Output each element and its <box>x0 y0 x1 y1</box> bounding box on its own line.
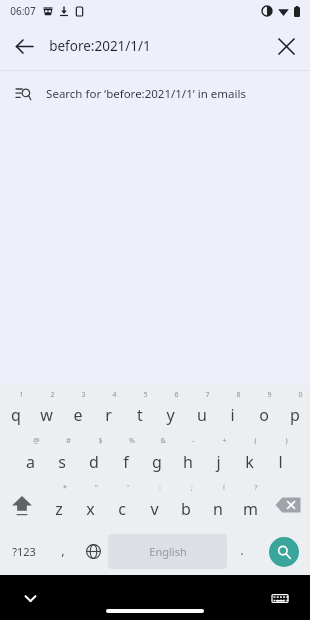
staticText: z <box>55 498 63 520</box>
button[interactable]: " <box>74 481 106 528</box>
staticText: 0 <box>298 390 303 400</box>
staticText: l <box>278 451 283 473</box>
staticText: 06:07 <box>10 4 36 18</box>
button[interactable]: Clear search <box>262 22 310 70</box>
staticText: f <box>123 451 129 473</box>
button[interactable]: - <box>172 434 203 481</box>
staticText: x <box>86 498 95 520</box>
button[interactable]: 2 <box>31 388 62 434</box>
staticText: , <box>61 541 65 559</box>
staticText: m <box>243 498 258 520</box>
staticText: 9 <box>267 390 272 400</box>
staticText: ? <box>254 483 258 493</box>
button[interactable]: ) <box>265 434 296 481</box>
staticText: e <box>73 404 83 426</box>
staticText: & <box>160 436 166 446</box>
staticText: b <box>181 498 191 520</box>
staticText: ! <box>223 483 225 493</box>
staticText: . <box>240 541 244 559</box>
button[interactable]: Backspace <box>266 481 310 528</box>
button[interactable]: 5 <box>124 388 155 434</box>
button[interactable]: Switch keyboard <box>262 580 298 616</box>
button[interactable]: 9 <box>248 388 279 434</box>
button[interactable]: ?123 <box>0 528 48 575</box>
button[interactable]: 7 <box>186 388 217 434</box>
button[interactable]: 3 <box>62 388 93 434</box>
staticText: ; <box>191 483 193 493</box>
staticText: v <box>150 498 159 520</box>
staticText: ) <box>285 436 288 446</box>
button[interactable]: Change language <box>78 528 108 575</box>
staticText: o <box>259 404 269 426</box>
button[interactable]: * <box>43 481 74 528</box>
button[interactable]: ! <box>202 481 234 528</box>
button[interactable]: 6 <box>155 388 186 434</box>
staticText: 3 <box>81 390 86 400</box>
staticText: " <box>95 483 98 493</box>
staticText: ' <box>127 483 129 493</box>
staticText: y <box>166 404 175 426</box>
staticText: u <box>197 404 207 426</box>
staticText: g <box>152 451 162 473</box>
staticText: r <box>105 404 112 426</box>
button[interactable]: English <box>108 534 227 569</box>
button[interactable]: Hide keyboard <box>12 580 48 616</box>
button[interactable]: @ <box>14 434 46 481</box>
staticText: 6 <box>174 390 179 400</box>
button[interactable]: # <box>46 434 78 481</box>
staticText: a <box>26 451 35 473</box>
staticText: + <box>222 436 227 446</box>
staticText: * <box>63 483 67 493</box>
button[interactable]: Search <box>257 528 310 575</box>
button[interactable]: $ <box>78 434 110 481</box>
button[interactable]: : <box>138 481 170 528</box>
staticText: ( <box>254 436 257 446</box>
staticText: $ <box>98 436 103 446</box>
button[interactable]: % <box>110 434 141 481</box>
button[interactable]: 8 <box>217 388 248 434</box>
staticText: English <box>149 544 187 559</box>
staticText: @ <box>33 436 40 446</box>
staticText: ?123 <box>12 544 36 559</box>
button[interactable]: . <box>227 528 257 575</box>
button[interactable]: ; <box>170 481 202 528</box>
button[interactable]: 4 <box>93 388 124 434</box>
staticText: q <box>11 404 21 426</box>
staticText: Search for ‘before:2021/1/1’ in emails <box>46 86 246 102</box>
button[interactable]: ' <box>106 481 138 528</box>
button[interactable]: Shift <box>0 481 43 528</box>
staticText: d <box>89 451 99 473</box>
staticText: h <box>183 451 193 473</box>
staticText: - <box>192 436 195 446</box>
button[interactable]: Back <box>0 22 48 70</box>
staticText: p <box>290 404 300 426</box>
staticText: n <box>213 498 223 520</box>
staticText: 4 <box>112 390 117 400</box>
button[interactable]: 1 <box>0 388 31 434</box>
button[interactable]: 0 <box>279 388 310 434</box>
staticText: 2 <box>50 390 55 400</box>
button[interactable]: & <box>141 434 172 481</box>
staticText: 1 <box>19 390 24 400</box>
staticText: before:2021/1/1 <box>49 37 151 55</box>
staticText: % <box>129 436 135 446</box>
button[interactable]: ( <box>234 434 265 481</box>
button[interactable]: Search for ‘before:2021/1/1’ in emails <box>0 71 310 116</box>
staticText: # <box>66 436 71 446</box>
staticText: : <box>159 483 161 493</box>
button[interactable]: , <box>48 528 78 575</box>
staticText: j <box>216 451 221 473</box>
staticText: c <box>118 498 126 520</box>
staticText: s <box>58 451 66 473</box>
staticText: k <box>245 451 254 473</box>
button[interactable]: ? <box>234 481 266 528</box>
staticText: 5 <box>143 390 148 400</box>
button[interactable]: + <box>203 434 234 481</box>
staticText: 7 <box>205 390 210 400</box>
staticText: t <box>137 404 143 426</box>
staticText: 8 <box>236 390 241 400</box>
staticText: i <box>230 404 235 426</box>
staticText: w <box>40 404 53 426</box>
